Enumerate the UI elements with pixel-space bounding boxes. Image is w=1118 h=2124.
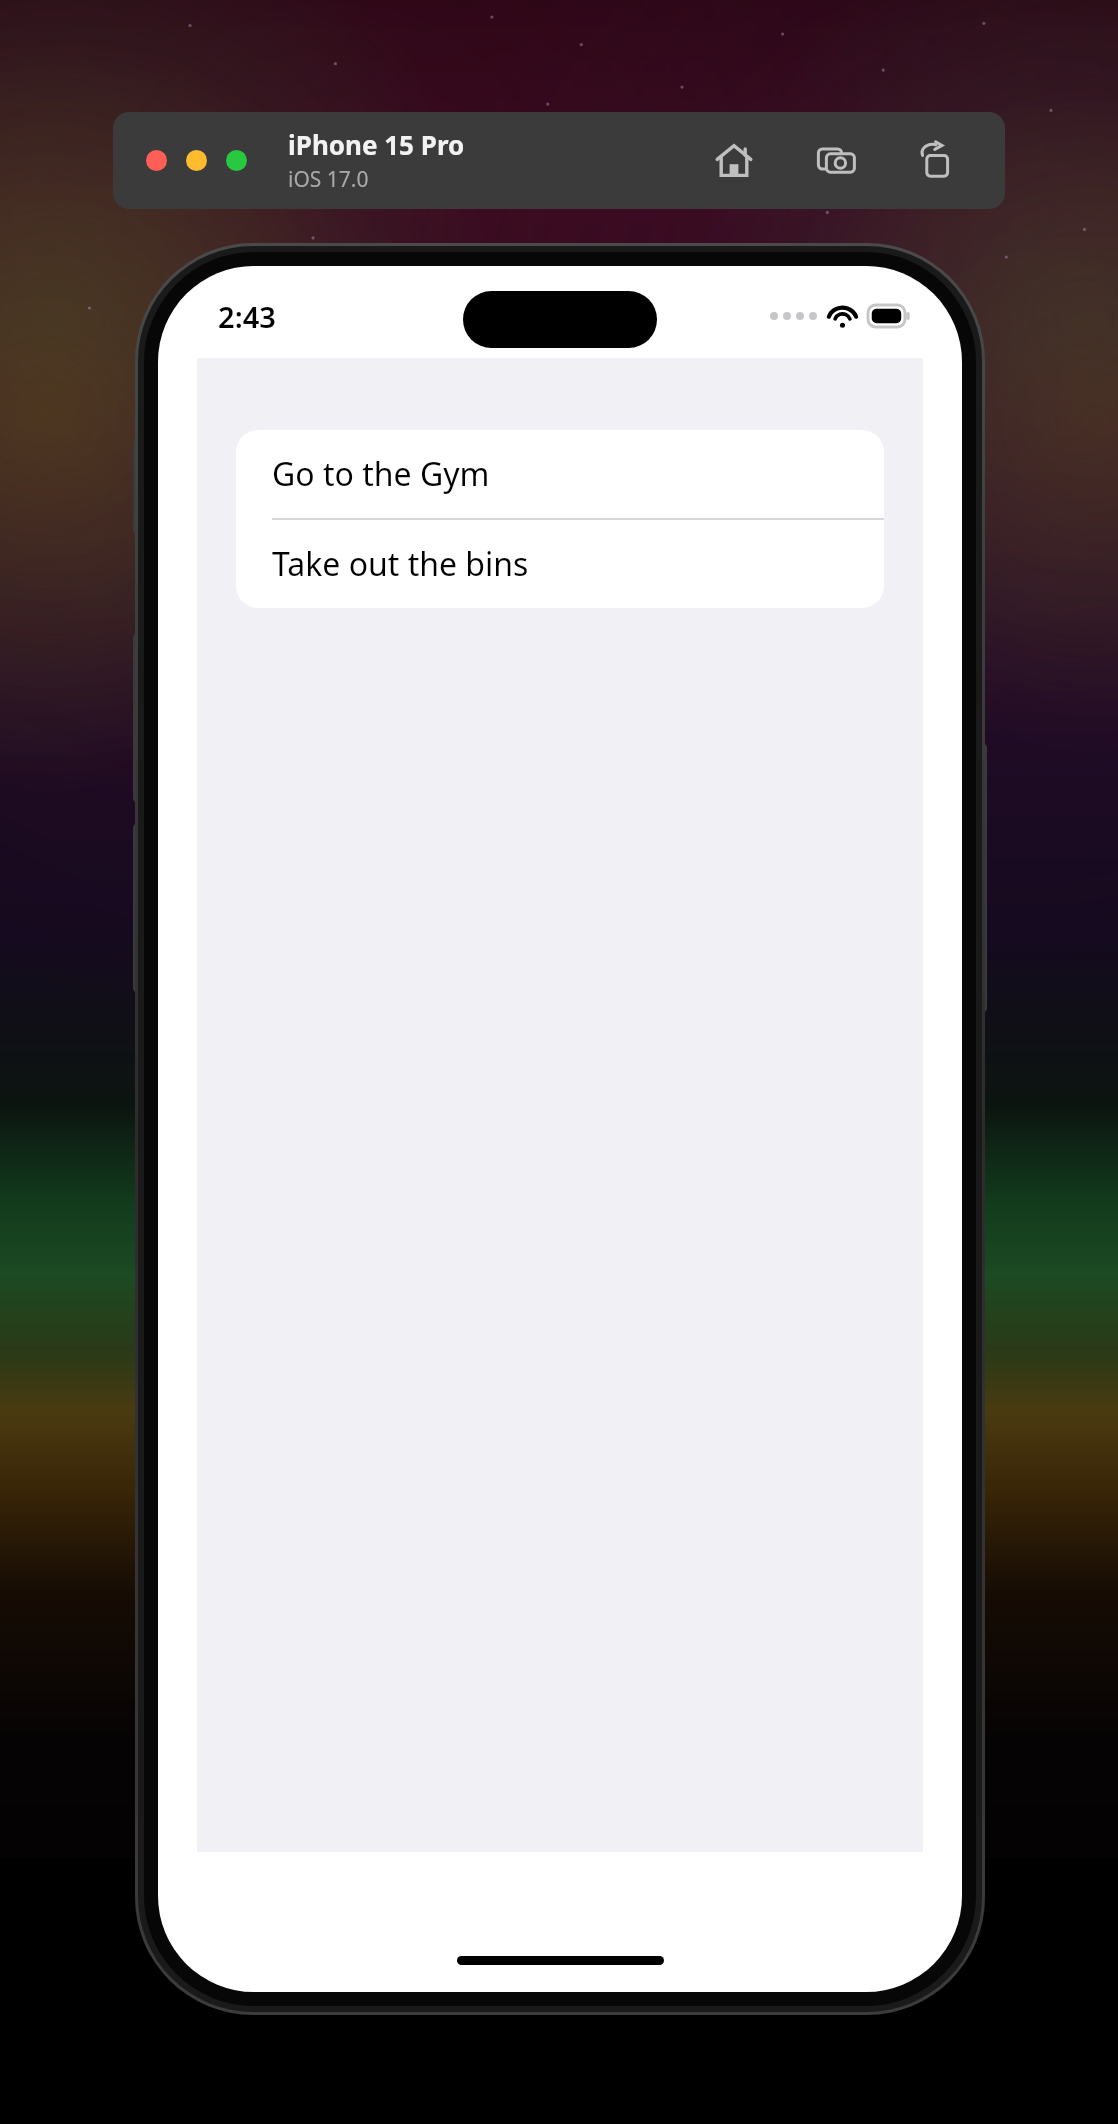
button[interactable]: Screenshot (809, 134, 863, 188)
staticText: Go to the Gym (272, 452, 490, 496)
button[interactable]: Rotate device (911, 134, 965, 188)
staticText: 2:43 (218, 297, 276, 336)
button[interactable]: Minimise (186, 150, 207, 171)
staticText: iOS 17.0 (288, 165, 369, 194)
button[interactable]: Zoom (226, 150, 247, 171)
button[interactable]: Take out the bins (236, 520, 884, 608)
staticText: iPhone 15 Pro (288, 127, 465, 162)
staticText: Take out the bins (272, 542, 529, 586)
button[interactable]: Go to the Gym (236, 430, 884, 518)
button[interactable]: Close (146, 150, 167, 171)
button[interactable]: Home (707, 134, 761, 188)
